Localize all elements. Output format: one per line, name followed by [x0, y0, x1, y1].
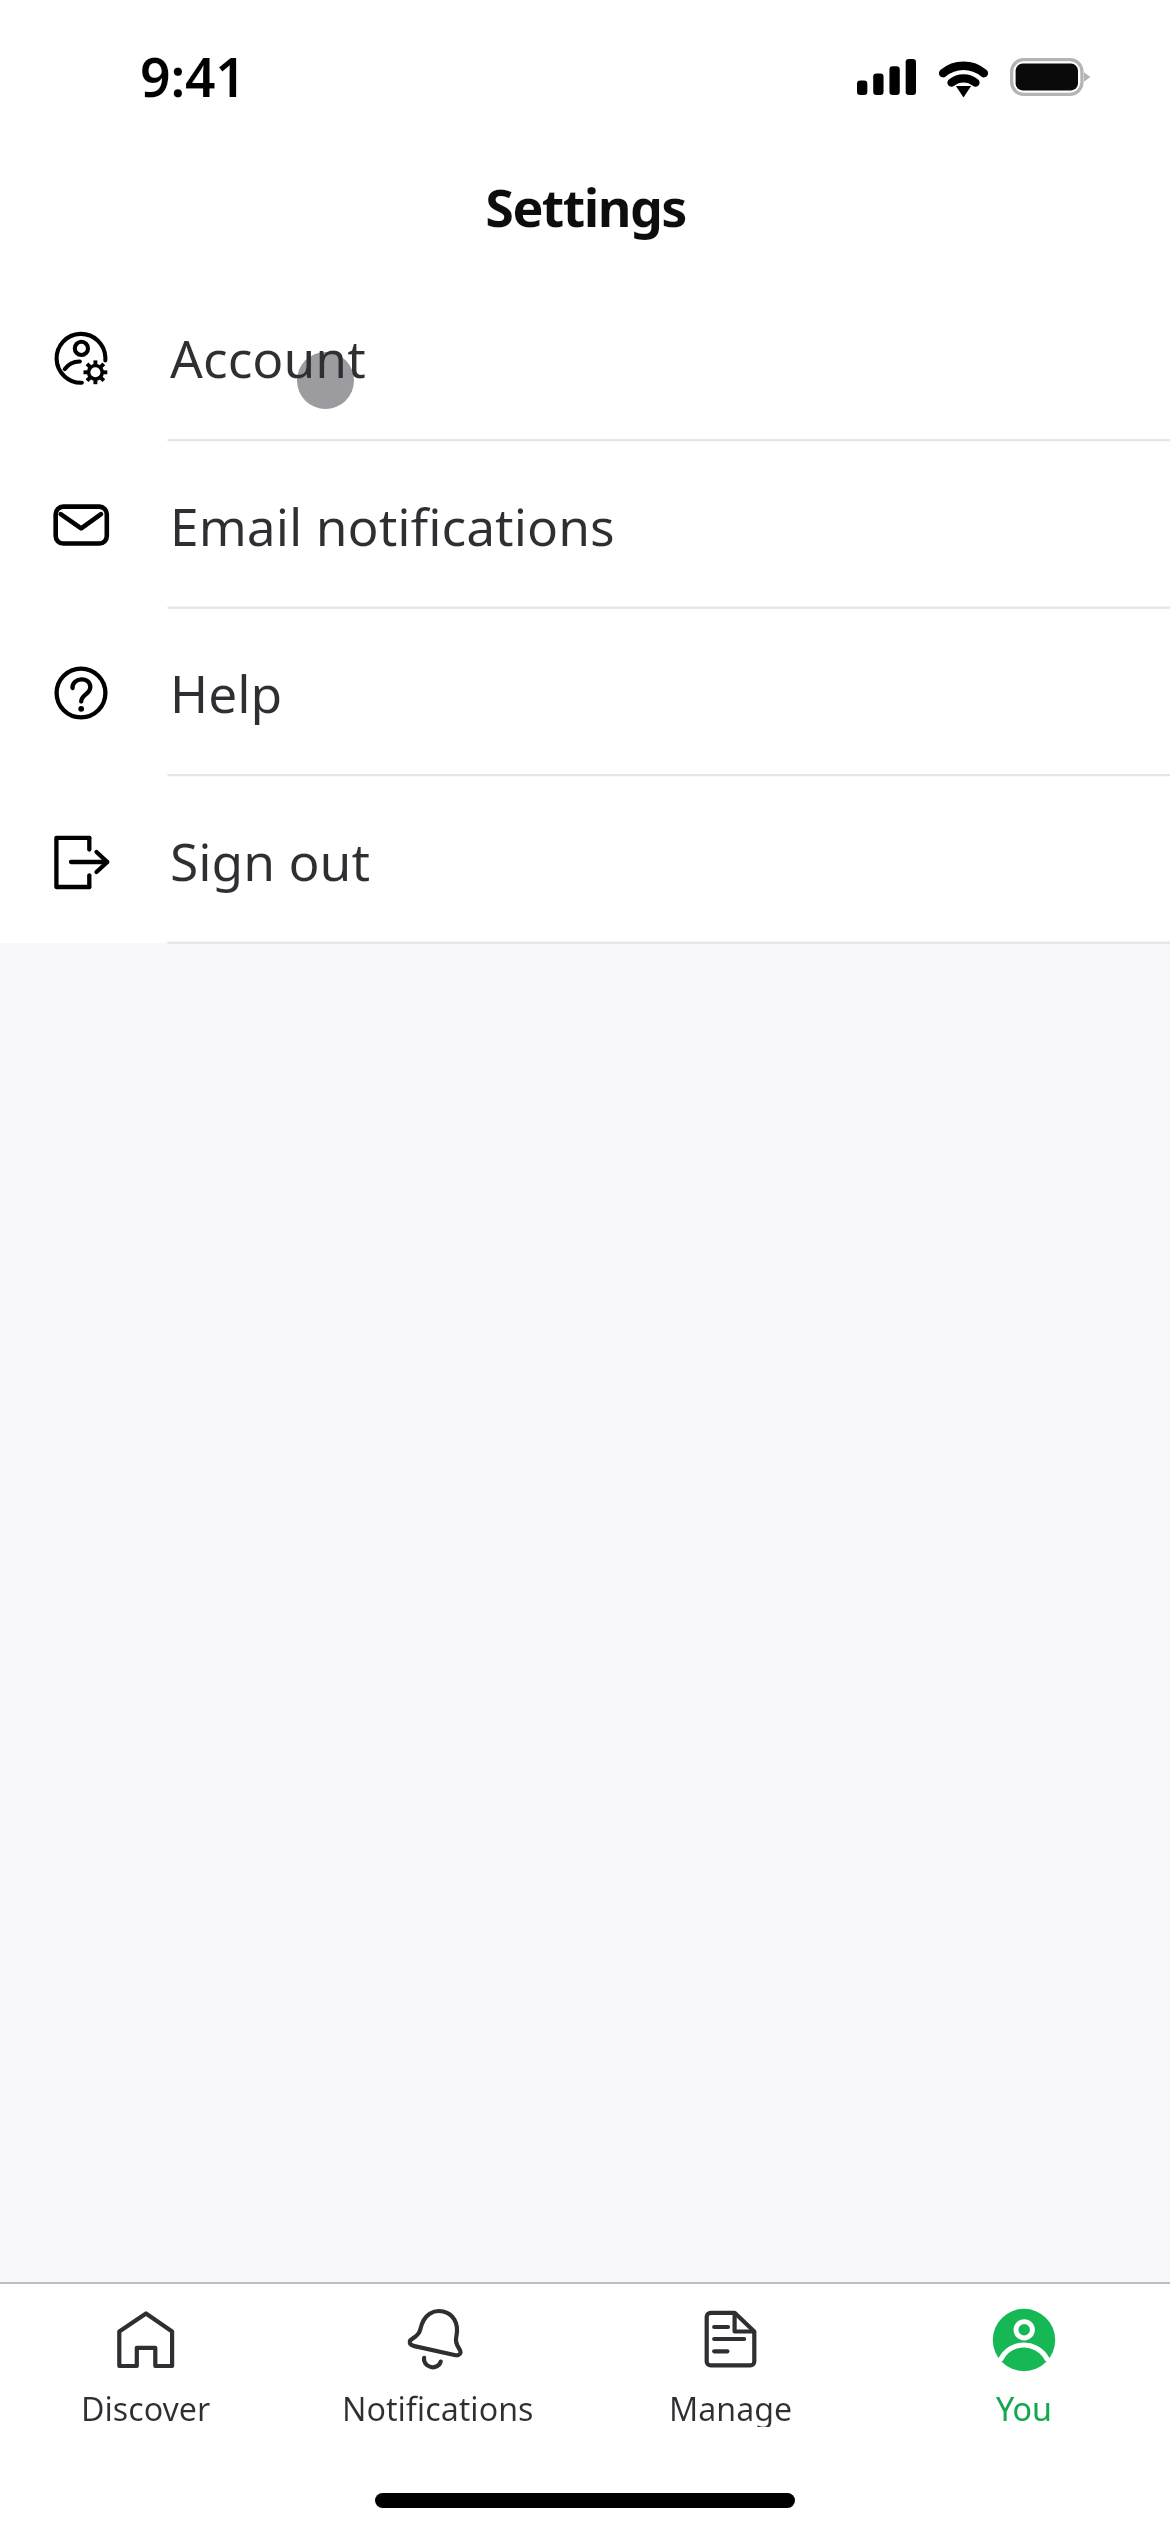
button[interactable]: Email notifications	[0, 441, 1170, 609]
button[interactable]: Notifications	[292, 2284, 584, 2427]
staticText: Sign out	[170, 826, 371, 896]
staticText: Manage	[669, 2387, 793, 2427]
button[interactable]: Help	[0, 608, 1170, 776]
staticText: Email notifications	[170, 491, 615, 561]
button[interactable]: Account	[0, 273, 1170, 441]
button[interactable]: You	[877, 2284, 1170, 2427]
button[interactable]: Discover	[0, 2284, 292, 2427]
staticText: Notifications	[342, 2387, 534, 2427]
staticText: Discover	[81, 2387, 211, 2427]
button[interactable]: Sign out	[0, 776, 1170, 944]
staticText: Settings	[485, 171, 686, 242]
staticText: Help	[170, 658, 283, 728]
staticText: You	[996, 2387, 1052, 2427]
button[interactable]: Manage	[584, 2284, 877, 2427]
staticText: 9:41	[140, 40, 246, 113]
staticText: Account	[170, 323, 366, 393]
